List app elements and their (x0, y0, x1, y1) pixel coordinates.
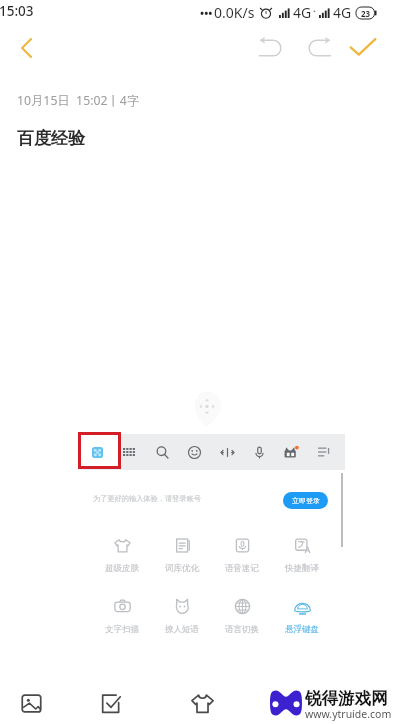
button[interactable]: Emoji (183, 441, 205, 463)
button[interactable]: Move keyboard (192, 391, 222, 427)
staticText: www.ytruide.com (305, 707, 392, 721)
staticText: 撩人短语 (165, 624, 199, 635)
staticText: ⁺ (313, 7, 316, 18)
staticText: 0.0K/s (214, 3, 255, 22)
staticText: 超级皮肤 (105, 563, 139, 574)
staticText: 23 (361, 8, 371, 19)
button[interactable]: Voice (248, 441, 270, 463)
staticText: 10月15日 15:02丨4字 (17, 92, 140, 109)
button[interactable]: Style (181, 682, 223, 724)
button[interactable]: More (313, 441, 335, 463)
button[interactable]: Insert image (10, 682, 52, 724)
button[interactable]: 超级皮肤 (95, 537, 149, 579)
staticText: 快捷翻译 (285, 563, 319, 574)
button[interactable]: 语音速记 (215, 537, 269, 579)
staticText: 语言切换 (225, 624, 259, 635)
button[interactable]: 语言切换 (215, 598, 269, 640)
button[interactable]: 文字扫描 (95, 598, 149, 640)
staticText: 词库优化 (165, 563, 199, 574)
staticText: 4G (333, 3, 352, 22)
staticText: ••• (200, 5, 213, 20)
button[interactable]: Checklist (90, 682, 132, 724)
button[interactable]: 立即登录 (283, 492, 328, 509)
staticText: 文字扫描 (105, 624, 139, 635)
staticText: 为了更好的输入体验，请登录账号 (93, 494, 201, 503)
staticText: 语音速记 (225, 563, 259, 574)
button[interactable]: 撩人短语 (155, 598, 209, 640)
button[interactable]: Cursor (216, 441, 238, 463)
button[interactable]: Undo (249, 25, 293, 69)
button[interactable]: 悬浮键盘 (275, 598, 329, 640)
staticText: 百度经验 (17, 128, 85, 149)
button[interactable]: Redo (297, 25, 341, 69)
button[interactable]: Search (151, 441, 173, 463)
button[interactable]: Back (4, 26, 48, 70)
staticText: 15:03 (0, 2, 34, 20)
button[interactable]: Keyboard (118, 441, 140, 463)
staticText: 锐得游戏网 (305, 688, 388, 709)
button[interactable]: 快捷翻译 (275, 537, 329, 579)
button[interactable]: Panel (86, 441, 108, 463)
button[interactable]: 词库优化 (155, 537, 209, 579)
staticText: 立即登录 (292, 496, 320, 505)
staticText: 4G (293, 3, 312, 22)
staticText: 悬浮键盘 (285, 624, 319, 635)
button[interactable]: Stickers (280, 441, 302, 463)
button[interactable]: Done (341, 25, 385, 69)
